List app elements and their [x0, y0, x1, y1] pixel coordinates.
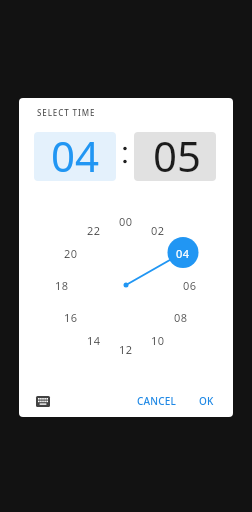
staticText: OK — [199, 394, 214, 408]
button[interactable]: 04 — [34, 132, 116, 181]
staticText: 20 — [64, 246, 78, 261]
button[interactable]: 05 — [134, 132, 216, 181]
button[interactable]: 00 — [106, 211, 146, 231]
button[interactable]: OK — [190, 390, 222, 412]
staticText: 14 — [87, 333, 101, 348]
staticText: 04 — [51, 132, 100, 176]
button[interactable]: 14 — [74, 330, 114, 350]
staticText: 04 — [176, 246, 190, 261]
staticText: 12 — [119, 342, 133, 357]
button[interactable] — [31, 391, 55, 411]
button[interactable]: CANCEL — [129, 390, 185, 412]
button[interactable]: 20 — [51, 243, 91, 263]
staticText: CANCEL — [137, 394, 177, 408]
staticText: 16 — [64, 310, 78, 325]
staticText: 08 — [174, 310, 188, 325]
staticText: 02 — [151, 223, 165, 238]
button[interactable]: 10 — [138, 330, 178, 350]
staticText: 22 — [87, 223, 101, 238]
button[interactable]: 02 — [138, 220, 178, 240]
staticText: 00 — [119, 214, 133, 229]
button[interactable]: 04 — [163, 243, 203, 263]
button[interactable]: 12 — [106, 339, 146, 359]
button[interactable]: 22 — [74, 220, 114, 240]
staticText: SELECT TIME — [37, 107, 96, 118]
button[interactable]: 18 — [42, 275, 82, 295]
button[interactable]: 16 — [51, 307, 91, 327]
button[interactable]: 06 — [170, 275, 210, 295]
button[interactable]: 08 — [161, 307, 201, 327]
staticText: 05 — [153, 132, 202, 176]
staticText: 10 — [151, 333, 165, 348]
staticText: 18 — [55, 278, 69, 293]
staticText: 06 — [183, 278, 197, 293]
